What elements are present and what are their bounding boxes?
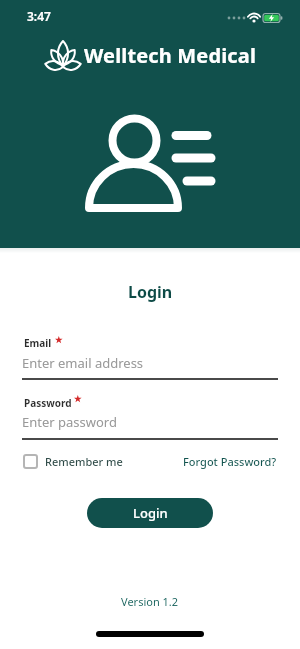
staticText: Email bbox=[24, 336, 52, 350]
button[interactable]: Enter email address bbox=[22, 354, 300, 372]
staticText: Forgot Password? bbox=[183, 454, 277, 469]
button[interactable]: Remember me bbox=[23, 454, 123, 469]
staticText: Login bbox=[133, 504, 168, 522]
staticText: Login bbox=[128, 281, 173, 303]
staticText: Enter password bbox=[22, 413, 117, 431]
staticText: Welltech Medical bbox=[84, 42, 257, 69]
staticText: Enter email address bbox=[22, 354, 144, 372]
staticText: Password bbox=[24, 396, 72, 410]
button[interactable]: Enter password bbox=[22, 413, 300, 431]
staticText: Version 1.2 bbox=[121, 594, 179, 609]
button[interactable]: Login bbox=[87, 498, 213, 528]
staticText: 3:47 bbox=[27, 8, 51, 24]
button[interactable]: Forgot Password? bbox=[183, 454, 277, 469]
staticText: Remember me bbox=[45, 454, 123, 469]
